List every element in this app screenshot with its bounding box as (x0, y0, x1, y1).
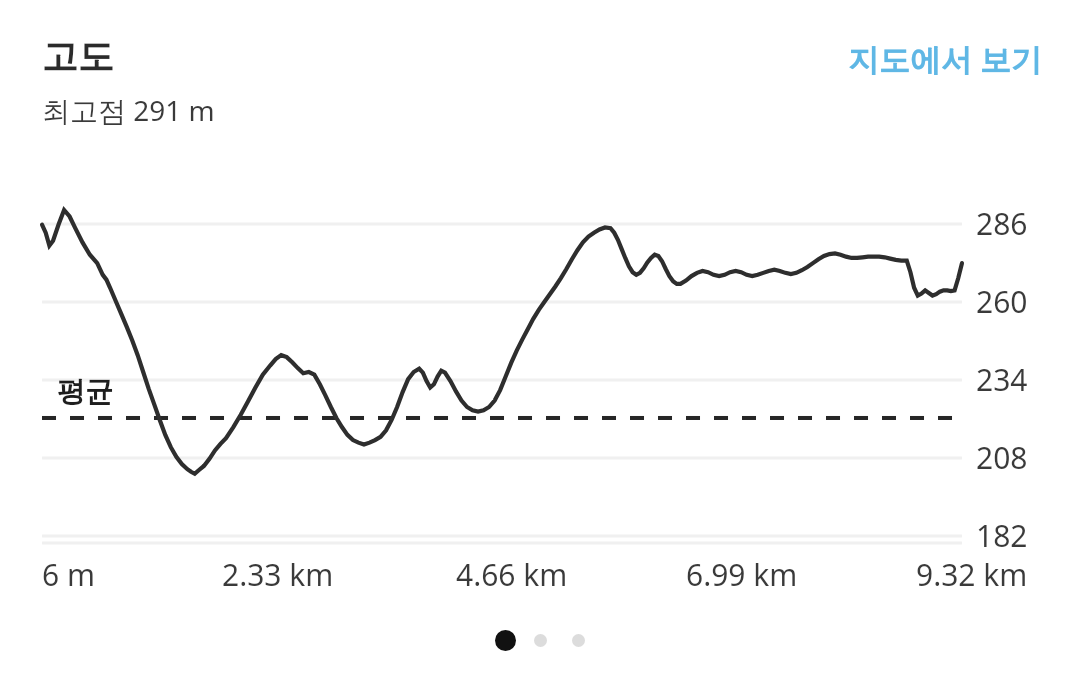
staticText: 4.66 km (456, 554, 568, 595)
staticText: 9.32 km (916, 554, 1028, 595)
staticText: 208 (976, 437, 1028, 478)
staticText: 지도에서 보기 (848, 38, 1043, 80)
button[interactable]: 지도에서 보기 (838, 30, 1053, 88)
staticText: 최고점 291 m (42, 91, 215, 129)
staticText: 234 (976, 359, 1028, 400)
staticText: 182 (976, 515, 1028, 556)
button[interactable]: Page 1, selected (495, 630, 516, 651)
button[interactable]: Page 2 (534, 634, 547, 647)
staticText: 2.33 km (222, 554, 334, 595)
staticText: 260 (976, 281, 1028, 322)
staticText: 6.99 km (686, 554, 798, 595)
button[interactable]: Page 3 (572, 634, 585, 647)
staticText: 평균 (57, 374, 113, 409)
staticText: 286 (976, 203, 1028, 244)
staticText: 고도 (42, 34, 114, 79)
staticText: 6 m (42, 554, 96, 595)
